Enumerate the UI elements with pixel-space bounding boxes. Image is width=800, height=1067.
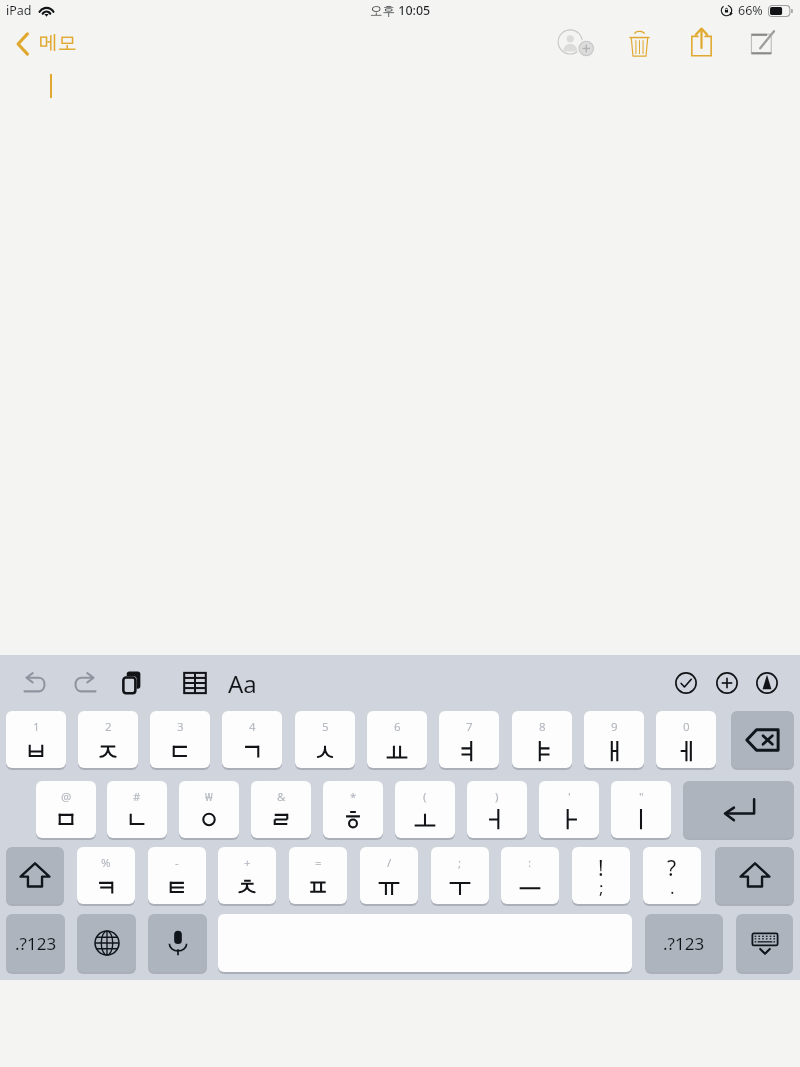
button[interactable]: 8: [512, 711, 572, 768]
staticText: 0: [683, 719, 690, 735]
staticText: 66%: [738, 2, 763, 19]
button[interactable]: ": [611, 781, 671, 838]
staticText: 8: [539, 719, 546, 735]
button[interactable]: Markup: [749, 660, 785, 706]
button[interactable]: Hide keyboard: [736, 914, 793, 972]
button[interactable]: .: [643, 847, 701, 904]
button[interactable]: %: [77, 847, 135, 904]
staticText: @: [61, 789, 72, 805]
staticText: iPad: [6, 2, 32, 19]
button[interactable]: .?123: [6, 914, 65, 972]
staticText: ?: [667, 854, 677, 883]
button[interactable]: Dictation: [148, 914, 207, 972]
staticText: :: [528, 855, 532, 871]
staticText: 4: [249, 719, 256, 735]
staticText: ": [639, 789, 644, 805]
button[interactable]: Redo: [65, 660, 103, 706]
button[interactable]: -: [148, 847, 206, 904]
button[interactable]: Checklist: [668, 660, 704, 706]
button[interactable]: Aa: [222, 660, 262, 706]
staticText: 7: [466, 719, 473, 735]
button[interactable]: ₩: [179, 781, 239, 838]
staticText: ): [495, 789, 499, 805]
button[interactable]: Add People: [548, 22, 604, 63]
button[interactable]: Shift: [715, 847, 794, 904]
staticText: 메모: [39, 31, 77, 55]
button[interactable]: 3: [150, 711, 210, 768]
button[interactable]: =: [289, 847, 347, 904]
staticText: 5: [322, 719, 329, 735]
staticText: .?123: [15, 932, 57, 955]
button[interactable]: Table: [176, 660, 214, 706]
button[interactable]: ;: [431, 847, 489, 904]
button[interactable]: ;: [572, 847, 630, 904]
button[interactable]: Delete: [619, 23, 660, 64]
button[interactable]: 7: [439, 711, 499, 768]
button[interactable]: Add attachment: [709, 660, 745, 706]
button[interactable]: /: [360, 847, 418, 904]
button[interactable]: 9: [584, 711, 644, 768]
button[interactable]: .?123: [645, 914, 723, 972]
button[interactable]: 2: [78, 711, 138, 768]
button[interactable]: Next keyboard: [77, 914, 136, 972]
button[interactable]: Shift: [6, 847, 64, 904]
staticText: 1: [33, 719, 40, 735]
button[interactable]: :: [501, 847, 559, 904]
button[interactable]: Return: [683, 781, 794, 838]
button[interactable]: 5: [295, 711, 355, 768]
button[interactable]: Share: [681, 21, 722, 63]
button[interactable]: Undo: [17, 660, 55, 706]
button[interactable]: +: [218, 847, 276, 904]
button[interactable]: ': [539, 781, 599, 838]
button[interactable]: 1: [6, 711, 66, 768]
button[interactable]: #: [107, 781, 167, 838]
staticText: (: [423, 789, 427, 805]
staticText: ;: [458, 855, 462, 871]
staticText: 2: [105, 719, 112, 735]
button[interactable]: *: [323, 781, 383, 838]
staticText: -: [175, 855, 179, 871]
staticText: /: [387, 855, 392, 871]
staticText: ;: [599, 876, 604, 899]
staticText: =: [315, 855, 322, 871]
staticText: 9: [611, 719, 618, 735]
button[interactable]: 메모: [16, 25, 77, 63]
staticText: ₩: [205, 789, 213, 805]
button[interactable]: Backspace: [731, 711, 794, 768]
staticText: 오후 10:05: [370, 2, 431, 19]
staticText: &: [277, 789, 286, 805]
button[interactable]: @: [36, 781, 96, 838]
button[interactable]: 4: [222, 711, 282, 768]
button[interactable]: Compose: [741, 23, 784, 61]
staticText: 6: [394, 719, 401, 735]
staticText: Aa: [228, 667, 257, 700]
button[interactable]: ): [467, 781, 527, 838]
staticText: .: [670, 876, 675, 899]
staticText: *: [350, 789, 357, 805]
button[interactable]: 6: [367, 711, 427, 768]
button[interactable]: 0: [656, 711, 716, 768]
staticText: !: [598, 854, 604, 883]
staticText: %: [101, 855, 111, 871]
button[interactable]: (: [395, 781, 455, 838]
staticText: +: [244, 855, 251, 871]
button[interactable]: &: [251, 781, 311, 838]
staticText: ': [568, 789, 571, 805]
staticText: 3: [177, 719, 184, 735]
button[interactable]: Paste: [114, 660, 150, 706]
staticText: #: [133, 789, 141, 805]
staticText: .?123: [663, 932, 705, 955]
